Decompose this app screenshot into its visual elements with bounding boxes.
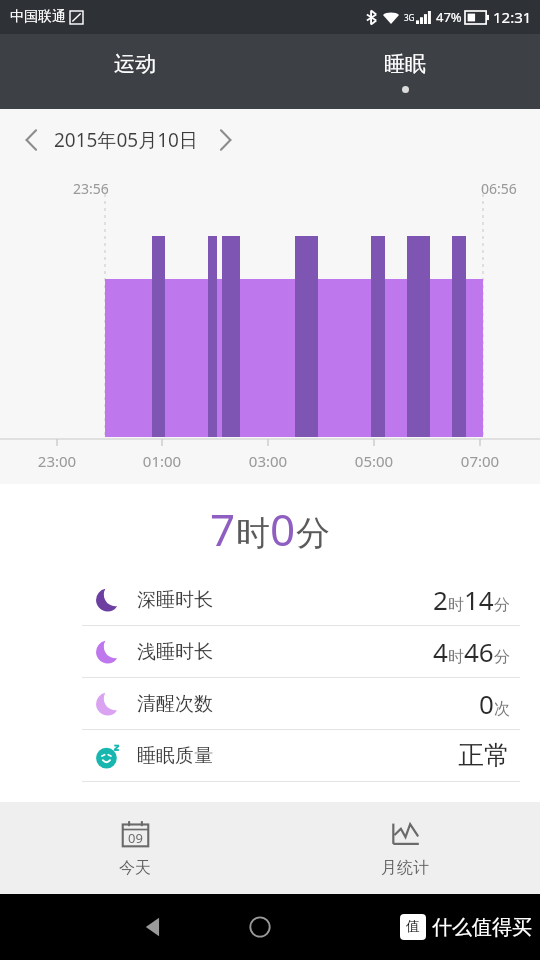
staticText: 46 [464, 634, 494, 669]
staticText: 0 [479, 686, 494, 721]
staticText: 次 [494, 699, 510, 719]
staticText: 06:56 [481, 179, 517, 198]
button[interactable]: Next day [208, 123, 242, 157]
button[interactable]: Home [240, 907, 280, 947]
staticText: 分 [296, 512, 330, 555]
staticText: 3G [404, 12, 415, 23]
staticText: 14 [464, 582, 494, 617]
staticText: 07:00 [453, 451, 507, 471]
staticText: 睡眠 [384, 51, 426, 77]
button[interactable]: 睡眠质量 [0, 730, 540, 781]
staticText: 分 [494, 647, 510, 667]
staticText: 7 [210, 499, 236, 559]
button[interactable]: 月统计 [270, 802, 540, 894]
staticText: 分 [494, 595, 510, 615]
staticText: 睡眠质量 [137, 744, 213, 768]
staticText: 深睡时长 [137, 588, 213, 612]
staticText: 12:31 [493, 7, 532, 27]
button[interactable]: Previous day [14, 123, 48, 157]
staticText: 09 [128, 829, 143, 847]
button[interactable]: 09 [0, 802, 270, 894]
staticText: 2015年05月10日 [54, 127, 198, 153]
staticText: 今天 [119, 858, 151, 878]
button[interactable]: 深睡时长 [0, 574, 540, 625]
staticText: 什么值得买 [432, 915, 532, 940]
staticText: 01:00 [135, 451, 189, 471]
staticText: 中国联通 [10, 8, 66, 26]
staticText: 运动 [114, 51, 156, 77]
staticText: 23:00 [30, 451, 84, 471]
button[interactable]: 清醒次数 [0, 678, 540, 729]
button[interactable]: 睡眠 [270, 34, 540, 109]
staticText: 值 [406, 918, 420, 936]
staticText: 23:56 [73, 179, 109, 198]
staticText: 正常 [458, 739, 510, 772]
staticText: 05:00 [347, 451, 401, 471]
staticText: 4 [433, 634, 448, 669]
staticText: 月统计 [381, 858, 429, 878]
button[interactable]: 运动 [0, 34, 270, 109]
staticText: 0 [270, 499, 296, 559]
staticText: 47% [436, 8, 462, 26]
staticText: 时 [236, 512, 270, 555]
staticText: 2 [433, 582, 448, 617]
button[interactable]: Back [132, 907, 172, 947]
button[interactable]: 浅睡时长 [0, 626, 540, 677]
staticText: 时 [448, 647, 464, 667]
staticText: 时 [448, 595, 464, 615]
staticText: 清醒次数 [137, 692, 213, 716]
staticText: 浅睡时长 [137, 640, 213, 664]
staticText: 03:00 [241, 451, 295, 471]
